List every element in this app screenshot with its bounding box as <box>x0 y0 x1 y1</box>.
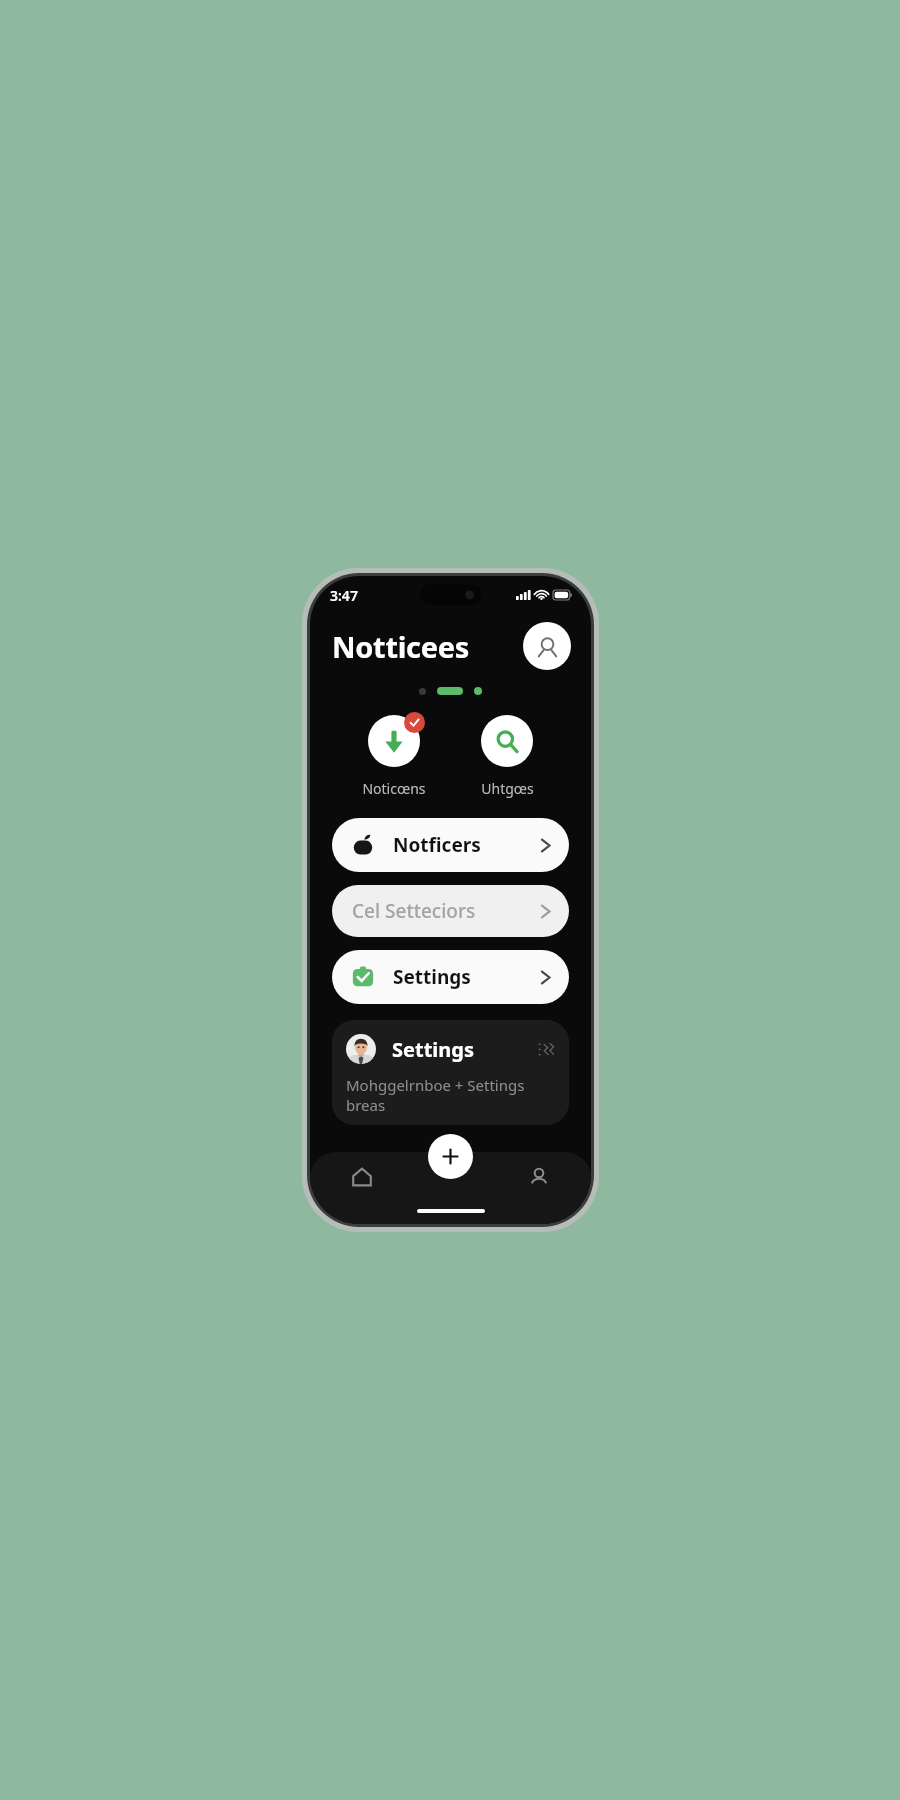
staticText: Settings <box>393 964 471 990</box>
staticText: Noticœns <box>362 779 426 798</box>
button[interactable]: Add <box>428 1134 473 1179</box>
button[interactable]: Noticœns <box>344 713 444 798</box>
button[interactable]: Notficers <box>332 818 569 872</box>
button[interactable] <box>419 688 426 695</box>
button[interactable]: Settings <box>332 1020 569 1125</box>
button[interactable]: Profile <box>517 1155 561 1199</box>
button[interactable]: Home <box>340 1155 384 1199</box>
button[interactable]: Cel Setteciors <box>332 885 569 937</box>
button[interactable] <box>437 687 463 695</box>
staticText: Cel Setteciors <box>352 898 476 924</box>
staticText: 3:47 <box>330 586 358 605</box>
button[interactable] <box>474 687 482 695</box>
button[interactable]: Uhtgœs <box>457 713 557 798</box>
button[interactable]: Account <box>523 622 571 670</box>
staticText: Mohggelrnboe + Settings breas <box>346 1075 555 1115</box>
staticText: Notticees <box>332 627 469 666</box>
staticText: Uhtgœs <box>481 779 534 798</box>
button[interactable]: Settings <box>332 950 569 1004</box>
staticText: Settings <box>392 1036 474 1063</box>
staticText: Notficers <box>393 832 481 858</box>
